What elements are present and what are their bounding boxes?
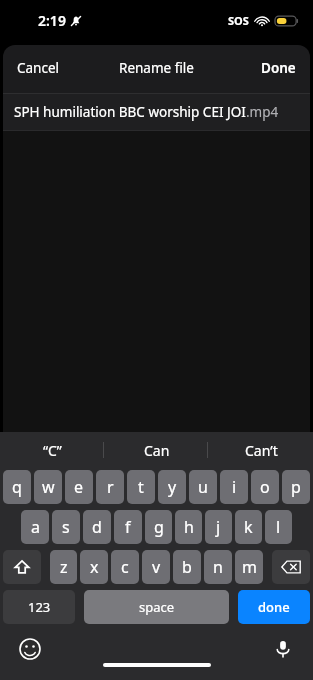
- button[interactable]: space: [84, 590, 229, 624]
- button[interactable]: f: [114, 510, 142, 544]
- button[interactable]: w: [34, 470, 62, 504]
- staticText: s: [62, 516, 70, 538]
- button[interactable]: done: [238, 590, 310, 624]
- staticText: v: [152, 556, 161, 578]
- button[interactable]: j: [205, 510, 232, 544]
- staticText: SPH humiliation BBC worship CEI JOI: [14, 103, 246, 121]
- button[interactable]: Can’t: [209, 432, 313, 468]
- staticText: 123: [28, 598, 51, 616]
- staticText: l: [276, 516, 281, 538]
- staticText: 2:19: [38, 11, 66, 30]
- staticText: Cancel: [17, 59, 60, 77]
- staticText: e: [74, 476, 84, 498]
- staticText: o: [260, 476, 270, 498]
- staticText: q: [12, 476, 22, 498]
- button[interactable]: x: [80, 550, 108, 584]
- button[interactable]: s: [52, 510, 80, 544]
- staticText: y: [168, 476, 177, 498]
- staticText: p: [291, 476, 301, 498]
- staticText: SOS: [228, 13, 249, 28]
- staticText: z: [60, 556, 68, 578]
- staticText: j: [216, 516, 221, 538]
- button[interactable]: b: [173, 550, 201, 584]
- button[interactable]: a: [21, 510, 49, 544]
- staticText: r: [107, 476, 114, 498]
- button[interactable]: q: [3, 470, 31, 504]
- button[interactable]: t: [127, 470, 155, 504]
- button[interactable]: h: [175, 510, 202, 544]
- staticText: t: [138, 476, 144, 498]
- button[interactable]: l: [265, 510, 292, 544]
- staticText: Can’t: [245, 441, 278, 460]
- button[interactable]: u: [189, 470, 217, 504]
- staticText: space: [139, 598, 175, 616]
- staticText: n: [213, 556, 223, 578]
- button[interactable]: i: [220, 470, 248, 504]
- staticText: f: [125, 516, 131, 538]
- staticText: d: [92, 516, 102, 538]
- staticText: h: [184, 516, 194, 538]
- button[interactable]: r: [96, 470, 124, 504]
- staticText: Rename file: [119, 59, 194, 77]
- staticText: c: [121, 556, 129, 578]
- staticText: i: [232, 476, 237, 498]
- button[interactable]: d: [83, 510, 111, 544]
- button[interactable]: v: [142, 550, 170, 584]
- button[interactable]: Can: [105, 432, 209, 468]
- button[interactable]: “C”: [0, 432, 105, 468]
- button[interactable]: g: [145, 510, 172, 544]
- button[interactable]: c: [111, 550, 139, 584]
- button[interactable]: n: [204, 550, 232, 584]
- button[interactable]: Shift: [3, 550, 41, 584]
- button[interactable]: SPH humiliation BBC worship CEI JOI: [3, 94, 310, 130]
- staticText: done: [258, 598, 290, 616]
- button[interactable]: Backspace: [272, 550, 310, 584]
- button[interactable]: Done: [253, 55, 304, 81]
- button[interactable]: p: [282, 470, 310, 504]
- button[interactable]: Emoji: [14, 633, 46, 665]
- staticText: .mp4: [246, 103, 279, 121]
- staticText: b: [182, 556, 192, 578]
- button[interactable]: y: [158, 470, 186, 504]
- staticText: Done: [261, 59, 296, 77]
- button[interactable]: 123: [3, 590, 75, 624]
- button[interactable]: Cancel: [9, 55, 68, 81]
- staticText: w: [42, 476, 55, 498]
- button[interactable]: z: [50, 550, 77, 584]
- staticText: m: [242, 556, 257, 578]
- staticText: Can: [144, 441, 170, 460]
- staticText: a: [31, 516, 40, 538]
- button[interactable]: k: [235, 510, 262, 544]
- button[interactable]: Dictation: [267, 633, 299, 665]
- staticText: “C”: [43, 441, 62, 460]
- button[interactable]: e: [65, 470, 93, 504]
- staticText: x: [90, 556, 99, 578]
- button[interactable]: m: [235, 550, 263, 584]
- button[interactable]: o: [251, 470, 279, 504]
- staticText: k: [244, 516, 253, 538]
- staticText: g: [154, 516, 164, 538]
- staticText: u: [198, 476, 208, 498]
